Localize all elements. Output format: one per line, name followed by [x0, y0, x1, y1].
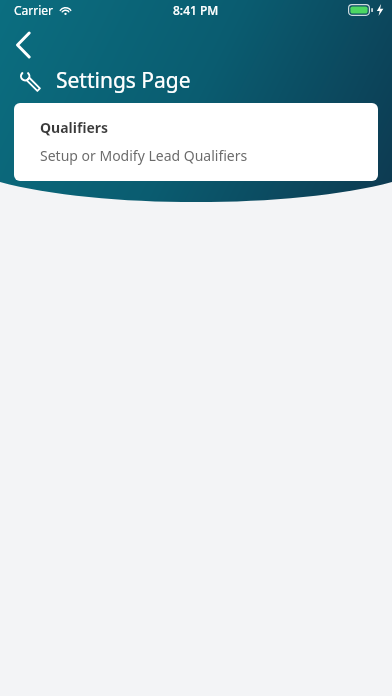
staticText: 8:41 PM [173, 2, 219, 18]
staticText: Setup or Modify Lead Qualifiers [40, 146, 248, 165]
staticText: Carrier [14, 2, 54, 18]
button[interactable]: Back [3, 25, 43, 65]
button[interactable]: Qualifiers [14, 103, 378, 181]
staticText: Qualifiers [40, 118, 109, 137]
staticText: Settings Page [56, 66, 191, 95]
